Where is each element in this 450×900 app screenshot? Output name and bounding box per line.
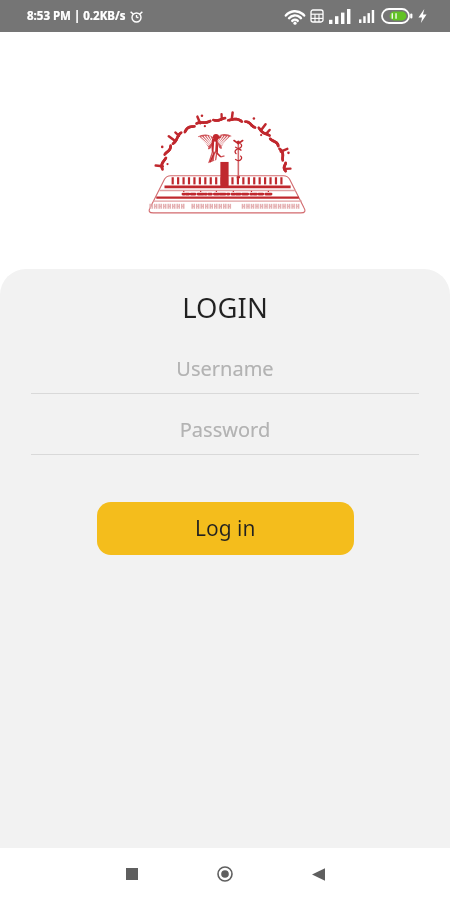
button[interactable]: Log in (97, 502, 354, 555)
staticText: 8:53 PM | 0.2KB/s (27, 8, 126, 24)
button[interactable]: Password (31, 416, 419, 455)
button[interactable]: Username (31, 355, 419, 394)
staticText: Password (31, 416, 419, 443)
staticText: LOGIN (0, 289, 450, 326)
button[interactable]: Back (294, 850, 342, 898)
button[interactable]: Recent apps (108, 850, 156, 898)
staticText: Username (31, 355, 419, 382)
staticText: Log in (195, 514, 256, 543)
button[interactable]: Home (201, 850, 249, 898)
